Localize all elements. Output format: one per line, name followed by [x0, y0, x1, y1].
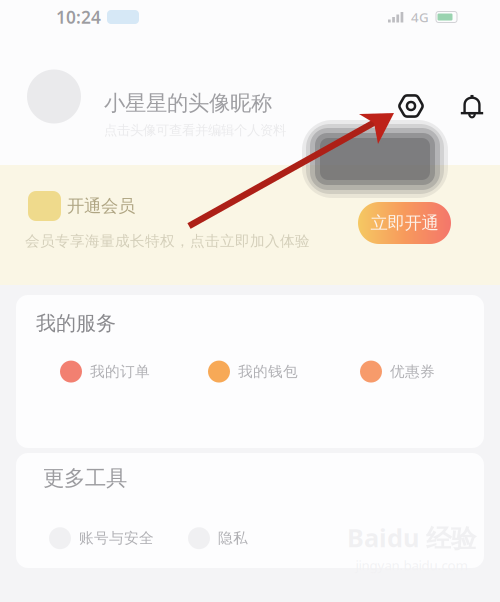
button[interactable]: 优惠券 — [360, 350, 435, 394]
staticText: jingyan.baidu.com — [355, 556, 467, 574]
staticText: 我的服务 — [36, 311, 116, 336]
staticText: 隐私 — [218, 529, 248, 547]
button[interactable]: 我的订单 — [60, 350, 150, 394]
staticText: 10:24 — [56, 5, 101, 28]
button[interactable]: 设置 — [389, 84, 433, 128]
button[interactable]: 立即开通 — [358, 202, 451, 244]
staticText: 小星星的头像昵称 — [104, 90, 272, 116]
staticText: 我的钱包 — [238, 363, 298, 381]
button[interactable]: 账号与安全 — [49, 516, 154, 560]
staticText: Baidu 经验 — [347, 520, 476, 554]
staticText: 4G — [411, 8, 429, 26]
staticText: 开通会员 — [67, 195, 135, 217]
staticText: 我的订单 — [90, 363, 150, 381]
staticText: 立即开通 — [370, 212, 438, 234]
staticText: 优惠券 — [390, 363, 435, 381]
button[interactable]: 隐私 — [188, 516, 248, 560]
staticText: 更多工具 — [43, 465, 127, 491]
staticText: 点击头像可查看并编辑个人资料 — [104, 122, 286, 139]
staticText: 账号与安全 — [79, 529, 154, 547]
button[interactable]: 我的钱包 — [208, 350, 298, 394]
button[interactable]: 消息通知 — [450, 84, 494, 128]
staticText: 会员专享海量成长特权，点击立即加入体验 — [25, 232, 310, 250]
